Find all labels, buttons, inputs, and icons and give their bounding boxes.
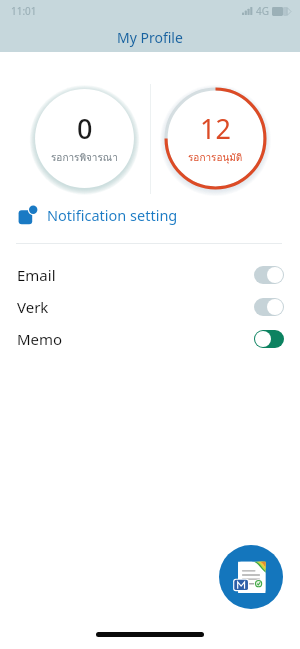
staticText: รอการอนุมัติ xyxy=(188,150,243,166)
staticText: Email xyxy=(17,265,56,285)
staticText: 0 xyxy=(77,110,93,147)
staticText: 12 xyxy=(200,110,231,147)
staticText: Verk xyxy=(17,297,49,317)
staticText: My Profile xyxy=(117,28,183,47)
button[interactable]: Memo xyxy=(0,323,300,355)
button[interactable]: Email xyxy=(0,259,300,291)
button[interactable]: Verk xyxy=(0,291,300,323)
staticText: 11:01 xyxy=(11,4,37,18)
staticText: รอการพิจารณา xyxy=(51,150,118,166)
button[interactable]: Notification setting xyxy=(0,196,300,234)
staticText: 4G xyxy=(256,4,269,18)
staticText: Notification setting xyxy=(47,205,178,225)
button[interactable]: New document xyxy=(219,545,283,609)
staticText: Memo xyxy=(17,329,63,349)
